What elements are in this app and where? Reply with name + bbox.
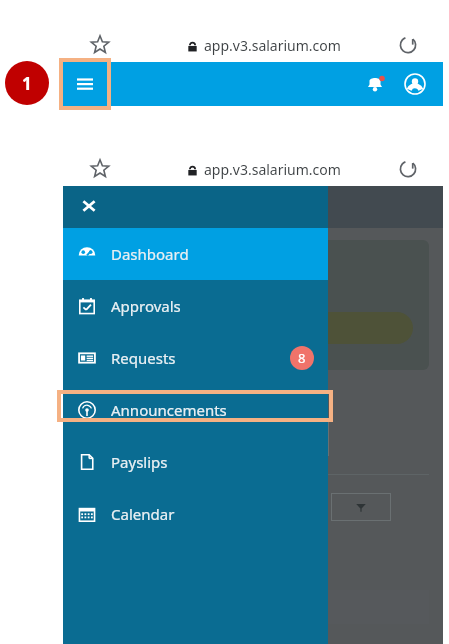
button[interactable]: Requests	[63, 332, 328, 384]
button[interactable]: Bookmark	[88, 33, 112, 57]
button[interactable]: Reload	[396, 157, 420, 181]
staticText: Announcements	[111, 400, 227, 420]
button[interactable]	[331, 493, 391, 521]
staticText: Approvals	[111, 296, 181, 316]
button[interactable]: Calendar	[63, 488, 328, 540]
staticText: 8	[298, 349, 306, 367]
button[interactable]: Dashboard	[63, 228, 328, 280]
button[interactable]: Reload	[396, 33, 420, 57]
staticText: Payslips	[111, 452, 168, 472]
staticText: and clock-outs	[79, 384, 168, 402]
button[interactable]: Account	[395, 64, 435, 104]
button[interactable]: Announcements	[63, 384, 328, 436]
staticText: Calendar	[111, 504, 175, 524]
staticText: Dashboard	[111, 244, 189, 264]
staticText: app.v3.salarium.com	[204, 36, 341, 55]
button[interactable]: Payslips	[63, 436, 328, 488]
button[interactable]: Notifications	[355, 64, 395, 104]
button[interactable]: Approvals	[63, 280, 328, 332]
button[interactable]: Bookmark	[88, 157, 112, 181]
button[interactable]	[57, 390, 333, 422]
staticText: Requests	[111, 348, 176, 368]
button[interactable]: Open navigation menu	[59, 58, 111, 110]
staticText: app.v3.salarium.com	[204, 160, 341, 179]
staticText: 1	[22, 72, 32, 95]
button[interactable]: Close navigation menu	[69, 186, 109, 226]
